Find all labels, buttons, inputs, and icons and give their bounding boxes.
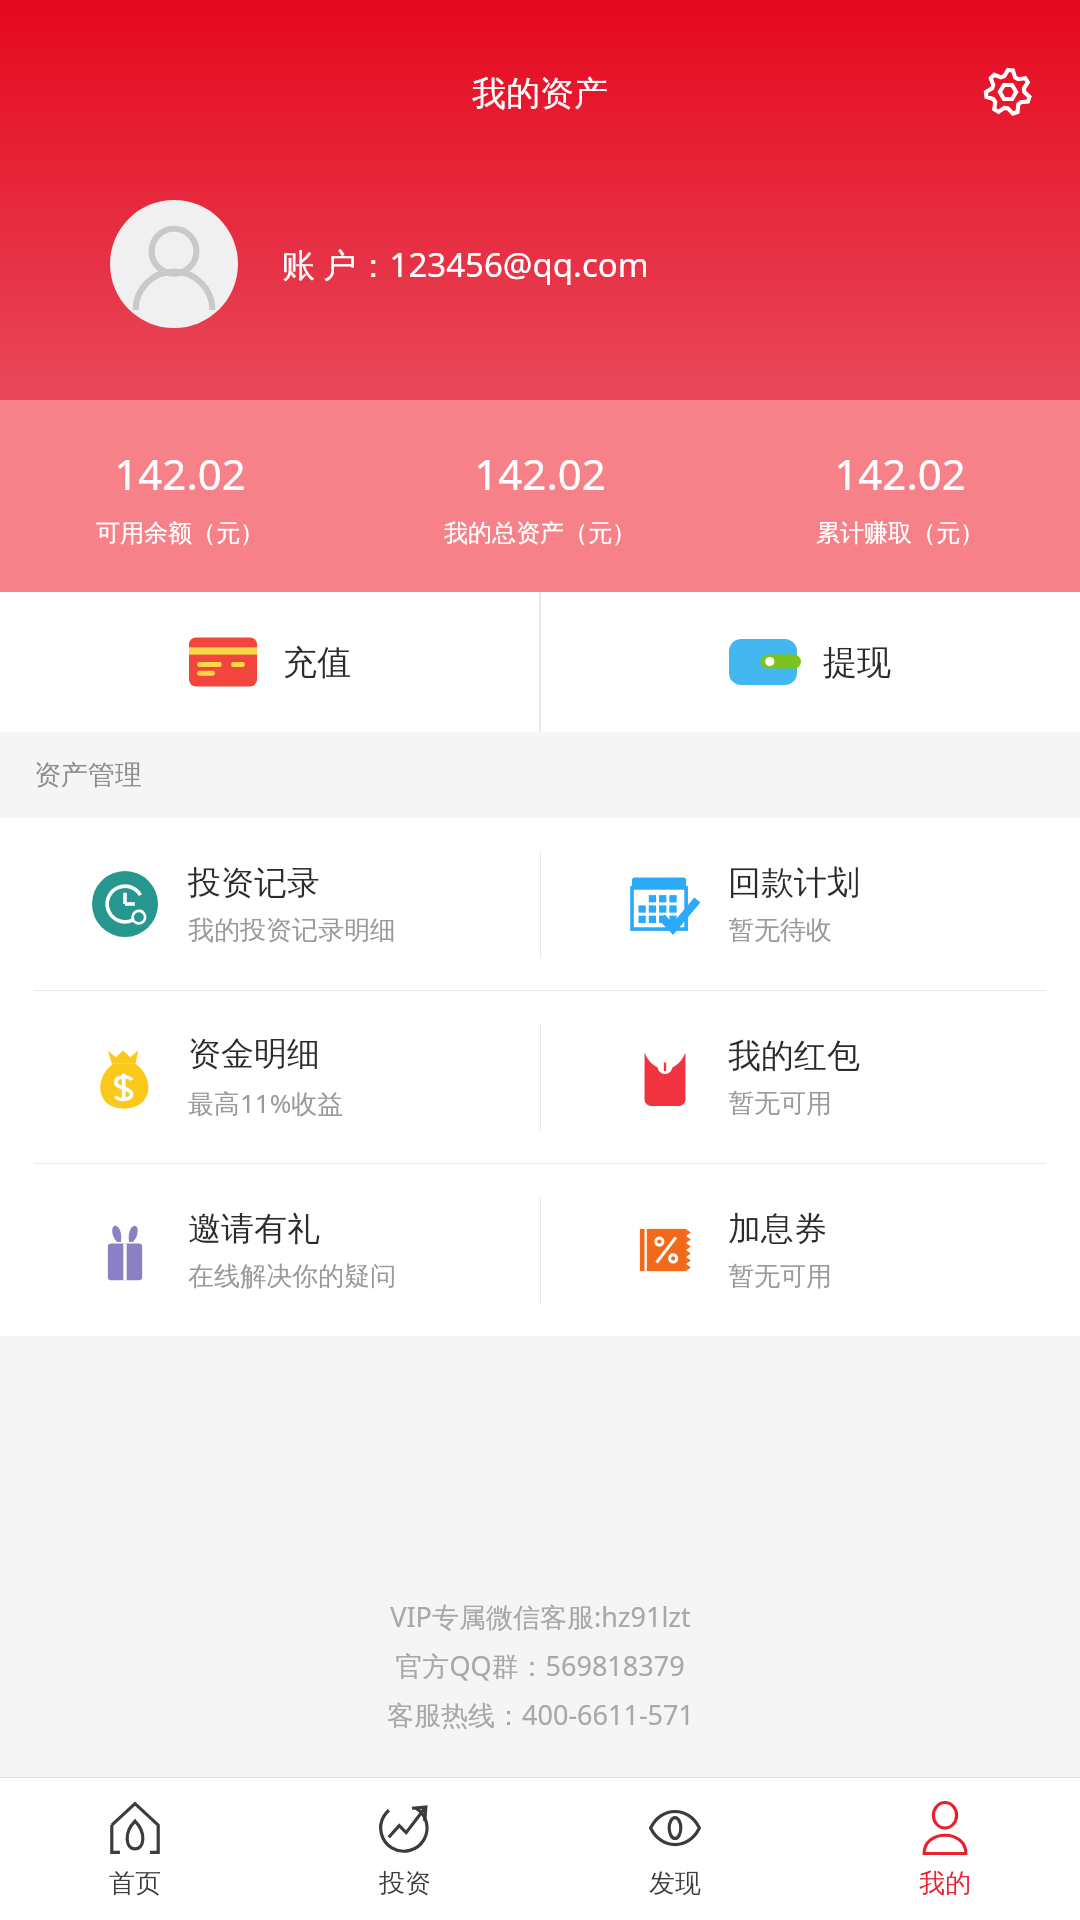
- staticText: 可用余额（元）: [96, 518, 264, 548]
- button[interactable]: 投资记录: [0, 818, 540, 990]
- staticText: 142.02: [834, 445, 966, 502]
- staticText: 投资: [379, 1867, 431, 1900]
- staticText: 142.02: [114, 445, 246, 502]
- staticText: 暂无待收: [728, 914, 832, 947]
- staticText: 我的: [919, 1867, 971, 1900]
- staticText: 邀请有礼: [188, 1208, 320, 1250]
- button[interactable]: 加息券: [540, 1164, 1080, 1336]
- staticText: 我的资产: [472, 72, 608, 115]
- button[interactable]: 142.02: [0, 445, 360, 548]
- staticText: 暂无可用: [728, 1260, 832, 1293]
- staticText: 142.02: [474, 445, 606, 502]
- button[interactable]: 142.02: [720, 445, 1080, 548]
- staticText: 发现: [649, 1867, 701, 1900]
- button[interactable]: 资金明细: [0, 991, 540, 1163]
- staticText: 客服热线：400-6611-571: [387, 1696, 694, 1733]
- staticText: 加息券: [728, 1208, 827, 1250]
- staticText: 账 户：123456@qq.com: [282, 242, 649, 287]
- staticText: 资金明细: [188, 1033, 320, 1075]
- staticText: VIP专属微信客服:hz91lzt: [390, 1598, 691, 1635]
- button[interactable]: 我的: [810, 1778, 1080, 1920]
- staticText: 我的总资产（元）: [444, 518, 636, 548]
- button[interactable]: 回款计划: [540, 818, 1080, 990]
- staticText: 最高11%收益: [188, 1085, 344, 1121]
- staticText: 充值: [283, 641, 351, 684]
- button[interactable]: 提现: [540, 592, 1080, 732]
- button[interactable]: 充值: [0, 592, 540, 732]
- staticText: 投资记录: [188, 862, 320, 904]
- staticText: 回款计划: [728, 862, 860, 904]
- button[interactable]: 邀请有礼: [0, 1164, 540, 1336]
- staticText: 首页: [109, 1867, 161, 1900]
- staticText: 在线解决你的疑问: [188, 1260, 396, 1293]
- button[interactable]: 首页: [0, 1778, 270, 1920]
- staticText: 提现: [823, 641, 891, 684]
- button[interactable]: 142.02: [360, 445, 720, 548]
- staticText: 暂无可用: [728, 1087, 832, 1120]
- button[interactable]: Settings: [978, 62, 1038, 122]
- staticText: 累计赚取（元）: [816, 518, 984, 548]
- staticText: 资产管理: [34, 758, 142, 792]
- staticText: 我的投资记录明细: [188, 914, 396, 947]
- button[interactable]: 投资: [270, 1778, 540, 1920]
- button[interactable]: 我的红包: [540, 991, 1080, 1163]
- staticText: 官方QQ群：569818379: [395, 1647, 685, 1684]
- button[interactable]: 发现: [540, 1778, 810, 1920]
- staticText: 我的红包: [728, 1035, 860, 1077]
